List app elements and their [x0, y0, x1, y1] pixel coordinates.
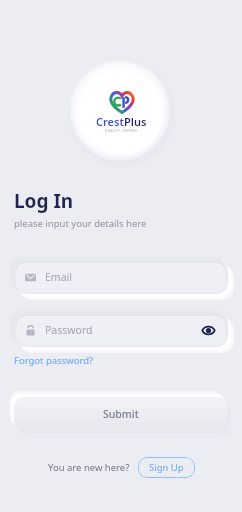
staticText: Log In [14, 188, 74, 214]
staticText: Plus [124, 114, 147, 129]
staticText: You are new here? [48, 461, 130, 474]
staticText: Password [45, 323, 93, 337]
staticText: QUALITY DEFINED [105, 129, 138, 133]
staticText: Submit [103, 407, 139, 421]
staticText: please input your details here [14, 217, 147, 230]
button[interactable]: Submit [14, 397, 228, 431]
staticText: Forgot password? [14, 354, 94, 367]
staticText: Sign Up [149, 461, 184, 474]
button[interactable]: Sign Up [138, 457, 195, 478]
button[interactable]: Email [14, 260, 228, 294]
staticText: Crest [96, 114, 124, 129]
button[interactable]: Show password [199, 321, 217, 339]
button[interactable]: Password [14, 313, 228, 347]
staticText: Email [45, 270, 72, 284]
button[interactable]: Forgot password? [14, 353, 94, 368]
